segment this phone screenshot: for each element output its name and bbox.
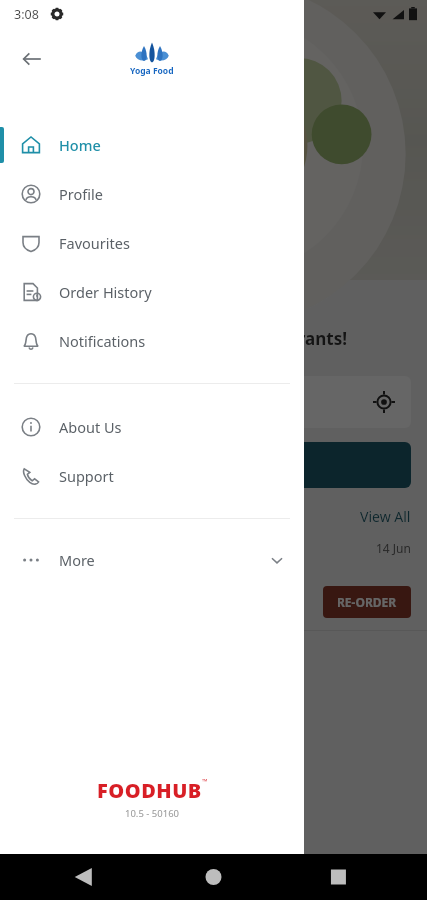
staticText: ™ xyxy=(202,777,208,787)
button[interactable]: Profile xyxy=(0,169,304,218)
button[interactable]: View All xyxy=(360,507,411,526)
staticText: Order from your favourite restaurants! xyxy=(18,327,348,350)
button[interactable]: More xyxy=(0,535,304,584)
button[interactable]: Order History xyxy=(0,267,304,316)
staticText: About Us xyxy=(59,417,122,437)
staticText: Support xyxy=(59,466,114,486)
button[interactable]: Back xyxy=(10,37,54,81)
staticText: Hungry? xyxy=(18,296,103,323)
staticText: Yoga Food xyxy=(130,65,174,77)
staticText: Recent Orders xyxy=(16,506,123,526)
staticText: FOODHUB xyxy=(97,777,202,804)
staticText: 3:08 xyxy=(14,6,39,23)
button[interactable]: SEARCH xyxy=(16,442,411,488)
staticText: 14 Jun xyxy=(376,540,411,556)
staticText: RE-ORDER xyxy=(337,594,397,610)
button[interactable]: Enter your postcode xyxy=(16,376,411,428)
button[interactable]: Favourites xyxy=(0,218,304,267)
staticText: Order History xyxy=(59,282,152,302)
staticText: Home xyxy=(59,135,101,155)
button[interactable]: Home xyxy=(0,120,304,169)
staticText: More xyxy=(59,550,95,570)
staticText: Favourites xyxy=(59,233,130,253)
button[interactable]: RE-ORDER xyxy=(337,594,397,610)
staticText: Profile xyxy=(59,184,103,204)
staticText: 10.5 - 50160 xyxy=(125,807,180,820)
button[interactable]: Support xyxy=(0,451,304,500)
staticText: Notifications xyxy=(59,331,146,351)
button[interactable]: Notifications xyxy=(0,316,304,365)
button[interactable]: About Us xyxy=(0,402,304,451)
